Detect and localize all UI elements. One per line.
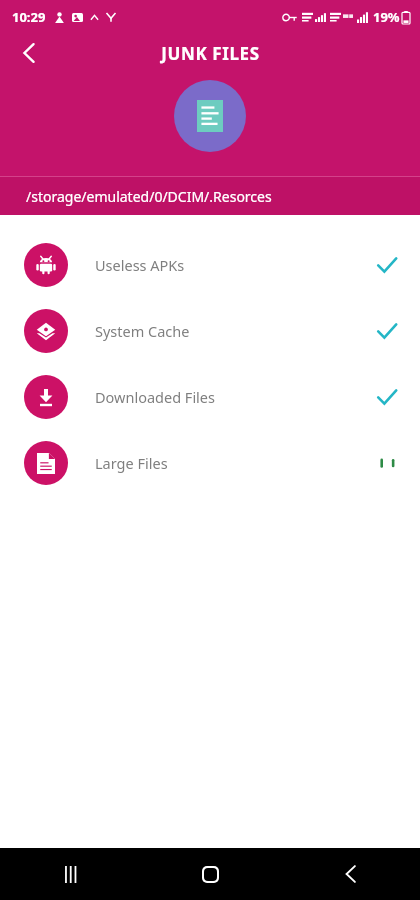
staticText: 19% bbox=[373, 8, 400, 26]
button[interactable]: Recent apps bbox=[0, 848, 140, 900]
staticText: /storage/emulated/0/DCIM/.Resorces bbox=[26, 187, 272, 206]
button[interactable]: System Cache bbox=[0, 298, 420, 364]
staticText: JUNK FILES bbox=[161, 42, 260, 65]
button[interactable]: /storage/emulated/0/DCIM/.Resorces bbox=[0, 177, 420, 215]
staticText: 10:29 bbox=[12, 8, 46, 26]
staticText: System Cache bbox=[95, 321, 190, 341]
button[interactable]: Useless APKs bbox=[0, 232, 420, 298]
staticText: Useless APKs bbox=[95, 255, 185, 275]
staticText: Large Files bbox=[95, 453, 168, 473]
button[interactable]: Back bbox=[8, 34, 50, 72]
button[interactable]: Back bbox=[280, 848, 420, 900]
button[interactable]: Large Files bbox=[0, 430, 420, 496]
staticText: Downloaded Files bbox=[95, 387, 215, 407]
button[interactable]: Downloaded Files bbox=[0, 364, 420, 430]
button[interactable]: Home bbox=[140, 848, 280, 900]
